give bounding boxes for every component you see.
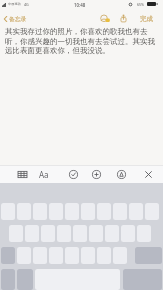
button[interactable]: Table: [14, 165, 30, 183]
staticText: Aa: [39, 169, 49, 180]
staticText: 中国移动: [8, 2, 21, 6]
button[interactable]: 备忘录: [2, 10, 30, 27]
staticText: 完成: [140, 15, 154, 23]
button[interactable]: Collaborate: [98, 10, 112, 27]
staticText: 10:48: [74, 2, 86, 8]
button[interactable]: Add: [88, 165, 104, 183]
staticText: 备忘录: [9, 15, 27, 22]
button[interactable]: Share: [116, 10, 130, 27]
staticText: 4G: [24, 2, 29, 7]
button[interactable]: Draw: [113, 165, 129, 183]
button[interactable]: Format: [36, 165, 52, 183]
button[interactable]: Checklist: [65, 165, 81, 183]
button[interactable]: 完成: [137, 10, 157, 27]
staticText: 其实我存过你的照片，你喜欢的歌我也有去听，你感兴趣的一切我也有去尝试过。其实我远…: [5, 27, 158, 55]
button[interactable]: Close keyboard: [140, 165, 156, 183]
staticText: 65%: [137, 2, 145, 7]
button[interactable]: [1, 247, 15, 264]
